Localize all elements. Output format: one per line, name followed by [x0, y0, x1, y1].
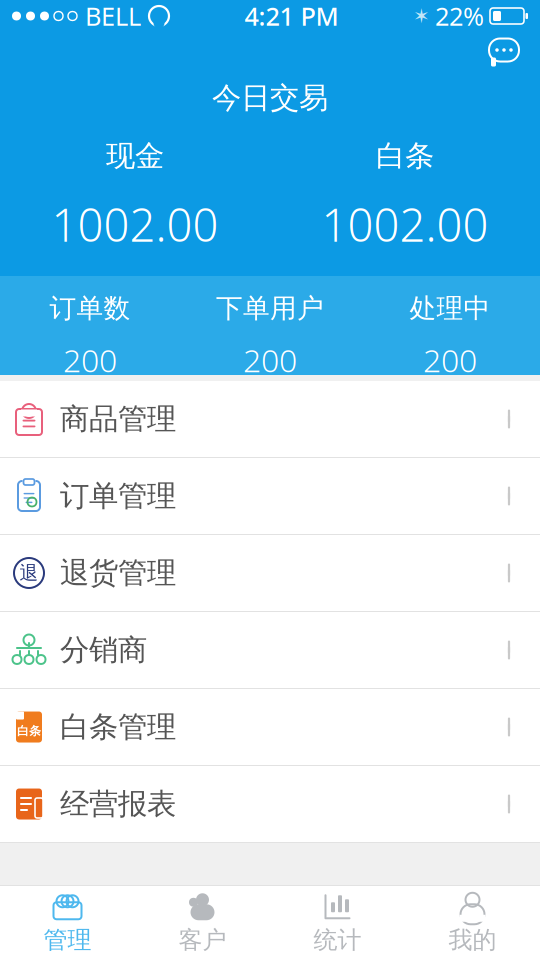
staticText: 退货管理 — [60, 555, 176, 591]
staticText: BELL — [85, 0, 141, 33]
staticText: 200 — [243, 339, 297, 381]
staticText: ✶ — [413, 5, 430, 27]
button[interactable]: 退 — [0, 535, 540, 612]
button[interactable]: 订单管理 — [0, 458, 540, 535]
staticText: 今日交易 — [212, 80, 328, 116]
button[interactable]: 商品管理 — [0, 381, 540, 458]
staticText: 白条 — [376, 138, 434, 174]
button[interactable]: Messages — [484, 33, 524, 73]
button[interactable]: 经营报表 — [0, 766, 540, 843]
button[interactable]: 统计 — [270, 887, 405, 959]
staticText: 订单数 — [49, 292, 130, 325]
button[interactable]: 白条 — [0, 689, 540, 766]
button[interactable]: 我的 — [405, 887, 540, 959]
staticText: 200 — [63, 339, 117, 381]
staticText: 200 — [423, 339, 477, 381]
staticText: 4:21 PM — [244, 0, 338, 33]
staticText: 我的 — [448, 925, 496, 955]
staticText: 客户 — [178, 925, 226, 955]
staticText: 统计 — [313, 925, 361, 955]
staticText: 白条 — [17, 724, 41, 738]
button[interactable]: 客户 — [135, 887, 270, 959]
staticText: 管理 — [43, 925, 91, 955]
button[interactable]: 管理 — [0, 887, 135, 959]
button[interactable]: 分销商 — [0, 612, 540, 689]
staticText: 订单管理 — [60, 478, 176, 514]
staticText: 白条管理 — [60, 709, 176, 745]
staticText: 22% — [435, 0, 484, 33]
staticText: 经营报表 — [60, 786, 176, 822]
staticText: 分销商 — [60, 632, 147, 668]
staticText: 商品管理 — [60, 401, 176, 437]
staticText: 退 — [19, 561, 38, 584]
staticText: 1002.00 — [51, 194, 218, 254]
staticText: 1002.00 — [321, 194, 488, 254]
staticText: 现金 — [106, 138, 164, 174]
staticText: 处理中 — [409, 292, 490, 325]
staticText: 下单用户 — [216, 292, 324, 325]
